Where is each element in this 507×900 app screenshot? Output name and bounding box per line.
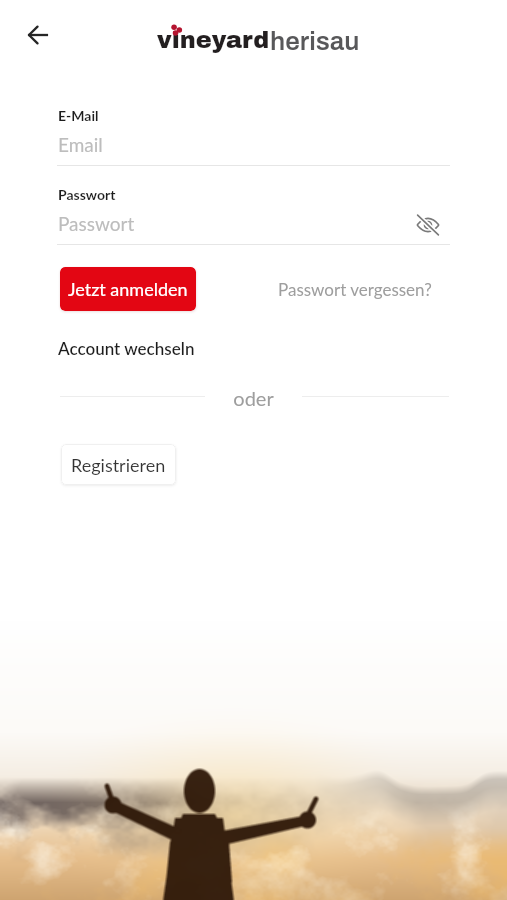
staticText: herisau xyxy=(270,27,360,55)
button[interactable]: Account wechseln xyxy=(58,338,195,358)
staticText: Jetzt anmelden xyxy=(68,278,188,300)
staticText: Passwort xyxy=(58,212,135,235)
staticText: Passwort vergessen? xyxy=(278,279,432,299)
button[interactable]: Passwort vergessen? xyxy=(270,267,440,311)
staticText: vineyard xyxy=(157,27,270,53)
button[interactable]: Registrieren xyxy=(61,444,176,485)
button[interactable]: Back xyxy=(16,13,60,57)
staticText: Registrieren xyxy=(71,454,166,476)
button[interactable]: Show password xyxy=(411,208,444,241)
staticText: Account wechseln xyxy=(58,338,195,358)
button[interactable]: Jetzt anmelden xyxy=(60,267,196,311)
staticText: E-Mail xyxy=(58,107,99,124)
staticText: oder xyxy=(0,386,507,410)
staticText: Passwort xyxy=(58,186,116,203)
staticText: Email xyxy=(58,133,103,156)
